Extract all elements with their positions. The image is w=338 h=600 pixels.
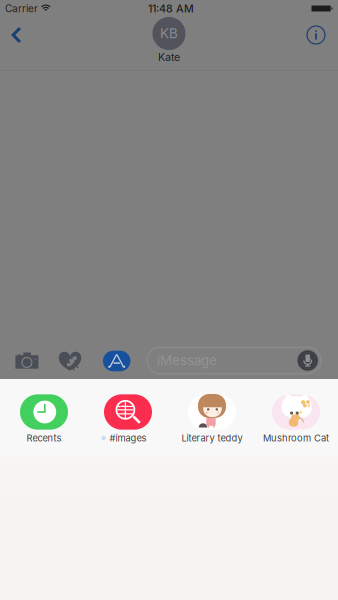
button[interactable]: Kate [152, 17, 185, 61]
button[interactable]: Details [298, 17, 334, 53]
button[interactable]: Digital Touch [50, 341, 90, 381]
button[interactable]: iMessage apps [97, 342, 136, 380]
staticText: Mushroom Cat [263, 432, 329, 444]
staticText: 11:48 AM [148, 2, 194, 15]
button[interactable]: Recents [2, 394, 86, 447]
staticText: Carrier [5, 2, 38, 15]
staticText: #images [109, 432, 146, 444]
button[interactable]: Camera [7, 341, 46, 380]
staticText: KB [160, 25, 178, 41]
staticText: iMessage [157, 352, 217, 368]
button[interactable]: Back [2, 16, 30, 54]
button[interactable]: Record audio message [297, 350, 318, 371]
button[interactable]: Mushroom Cat [254, 394, 338, 447]
staticText: Literary teddy [181, 432, 242, 444]
button[interactable]: Literary teddy [170, 394, 254, 447]
staticText: Kate [158, 50, 180, 63]
button[interactable]: #images [86, 394, 170, 447]
staticText: Recents [26, 432, 61, 444]
